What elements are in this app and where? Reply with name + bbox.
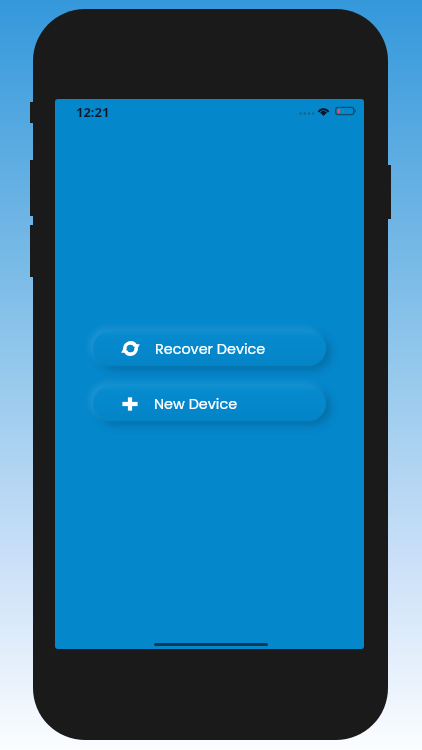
other: Add <box>122 397 138 411</box>
staticText: Recover Device <box>155 339 266 359</box>
staticText: New Device <box>154 394 238 414</box>
button[interactable]: Add <box>93 386 326 421</box>
staticText: 12:21 <box>76 103 110 121</box>
other: Recover <box>122 341 139 356</box>
button[interactable]: Recover <box>93 331 326 366</box>
